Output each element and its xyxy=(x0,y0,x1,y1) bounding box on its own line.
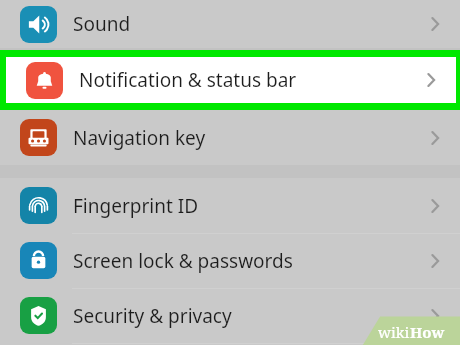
staticText: Fingerprint ID xyxy=(73,193,199,219)
staticText: Notification & status bar xyxy=(79,67,297,93)
button[interactable]: Sound xyxy=(0,0,460,48)
button[interactable]: Security & privacy xyxy=(0,288,460,343)
button[interactable]: Screen lock & passwords xyxy=(0,233,460,288)
staticText: Screen lock & passwords xyxy=(73,248,293,274)
button[interactable]: Fingerprint ID xyxy=(0,178,460,233)
staticText: Navigation key xyxy=(73,125,206,151)
button[interactable]: Notification & status bar xyxy=(6,57,456,103)
button[interactable]: Navigation key xyxy=(0,110,460,165)
staticText: Security & privacy xyxy=(73,303,232,329)
staticText: How xyxy=(410,322,445,342)
staticText: Sound xyxy=(73,11,131,37)
staticText: wiki xyxy=(378,322,410,342)
